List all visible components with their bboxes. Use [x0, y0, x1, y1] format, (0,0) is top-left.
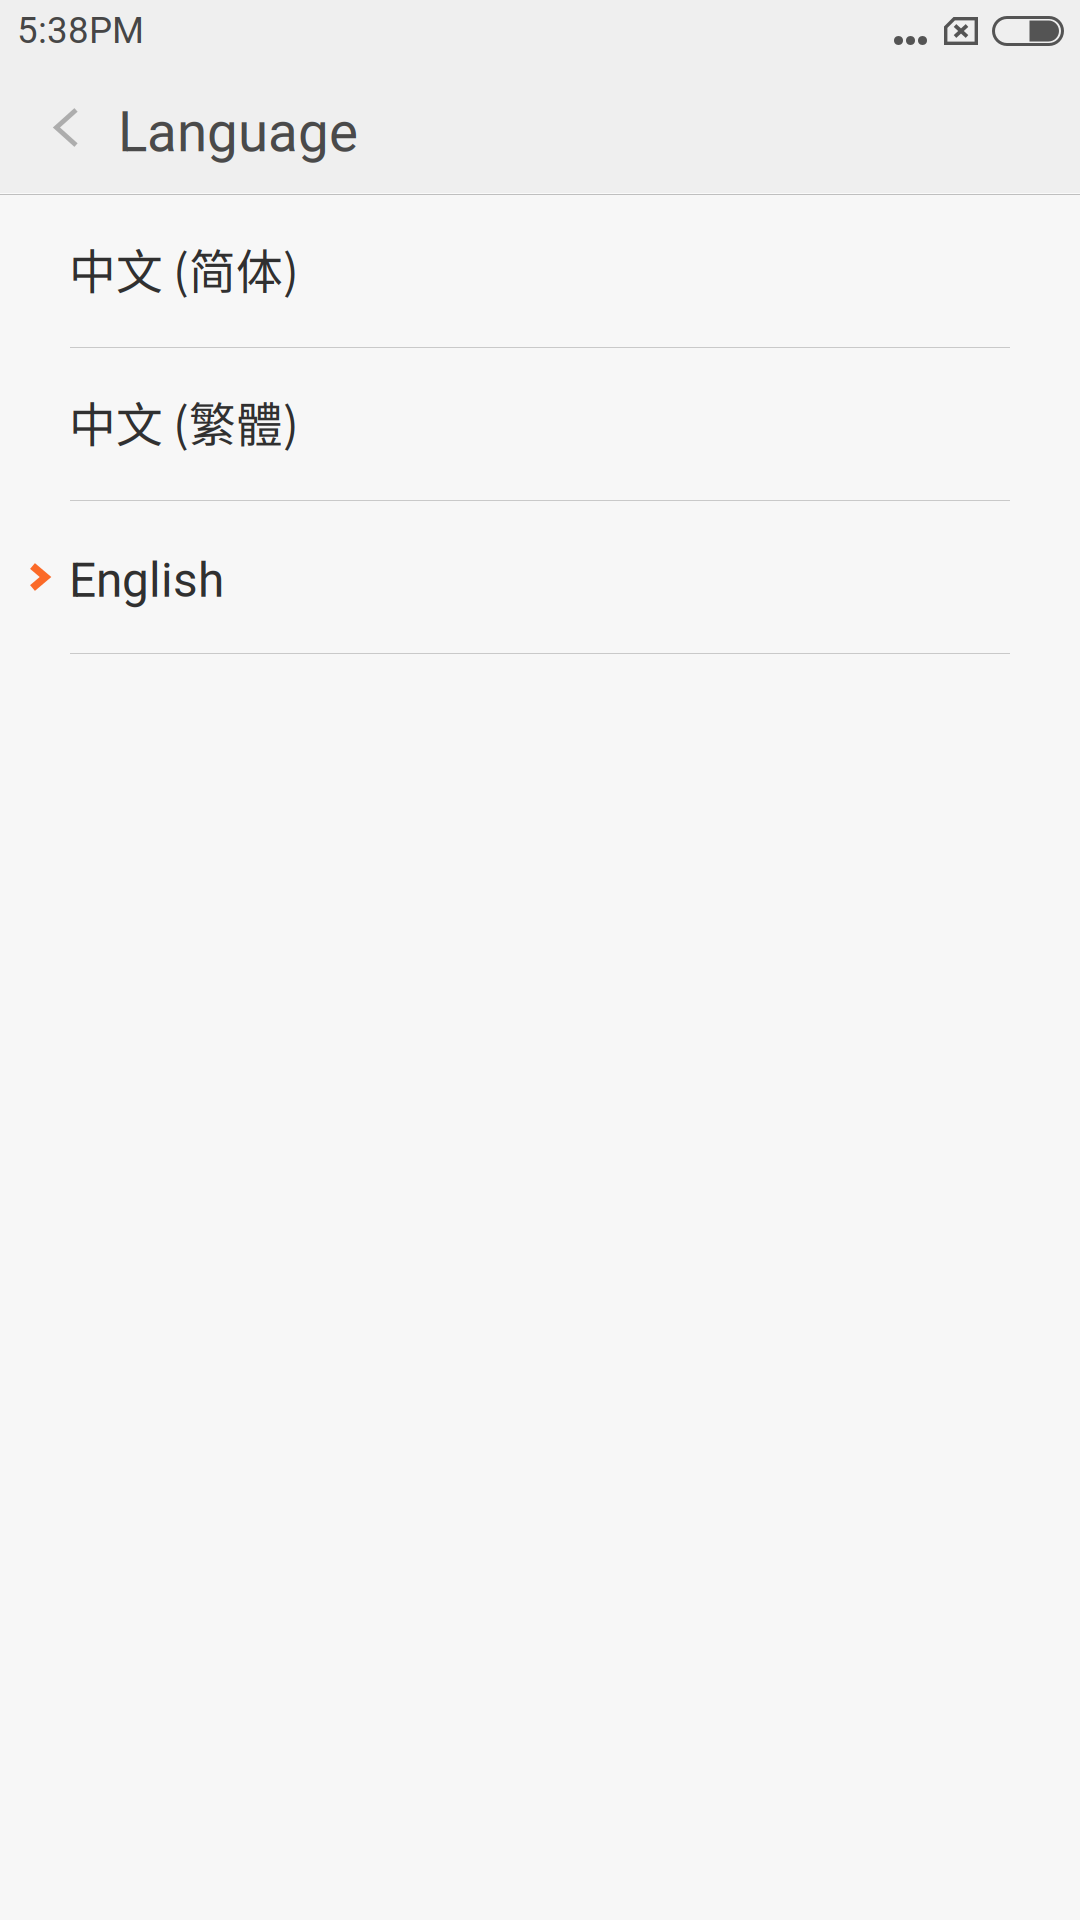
staticText: English	[69, 552, 224, 608]
button[interactable]: 中文 (繁體)	[0, 348, 1080, 501]
button[interactable]: 中文 (简体)	[0, 195, 1080, 348]
button[interactable]: Back	[0, 66, 118, 194]
staticText: 中文 (简体)	[69, 235, 299, 302]
button[interactable]: English	[0, 501, 1080, 654]
staticText: 中文 (繁體)	[69, 388, 299, 455]
staticText: 5:38PM	[17, 9, 144, 52]
staticText: Language	[118, 100, 358, 165]
